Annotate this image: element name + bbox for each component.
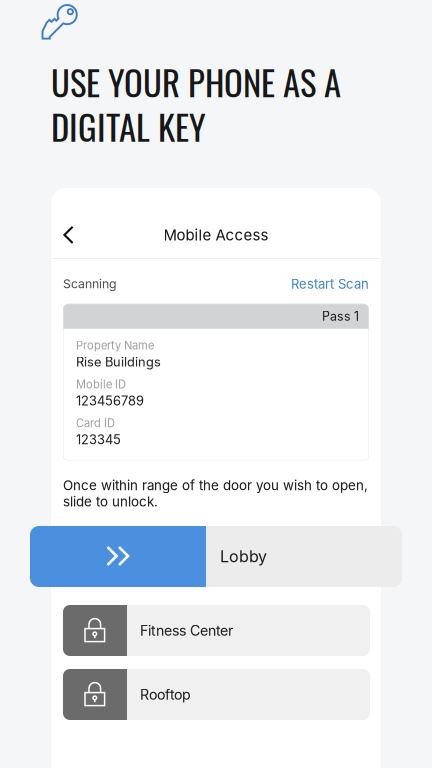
staticText: USE YOUR PHONE AS A	[51, 56, 341, 107]
staticText: Card ID	[76, 417, 115, 430]
staticText: Once within range of the door you wish t…	[63, 477, 368, 510]
button[interactable]: Fitness Center	[63, 605, 370, 656]
staticText: DIGITAL KEY	[51, 100, 206, 152]
staticText: Property Name	[76, 339, 154, 352]
staticText: Scanning	[63, 276, 117, 291]
staticText: Pass 1	[322, 309, 359, 324]
staticText: Fitness Center	[140, 622, 233, 639]
button[interactable]: Lobby	[30, 526, 402, 587]
staticText: Lobby	[220, 547, 267, 566]
staticText: 123456789	[76, 393, 144, 409]
button[interactable]: Rooftop	[63, 669, 370, 720]
staticText: Restart Scan	[291, 276, 369, 292]
staticText: Mobile Access	[163, 226, 268, 244]
button[interactable]: Restart Scan	[291, 276, 369, 292]
staticText: 123345	[76, 432, 121, 447]
staticText: Rooftop	[140, 686, 191, 703]
button[interactable]: Back	[58, 217, 79, 252]
staticText: Mobile ID	[76, 378, 126, 391]
staticText: Rise Buildings	[76, 354, 161, 370]
